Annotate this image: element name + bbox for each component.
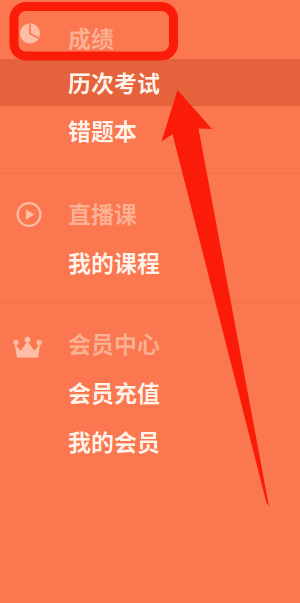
button[interactable]: 成绩 — [0, 15, 300, 59]
button[interactable]: 直播课 — [0, 191, 300, 235]
staticText: 直播课 — [68, 196, 137, 230]
button[interactable]: 历次考试 — [0, 58, 300, 105]
button[interactable]: 会员中心 — [0, 321, 300, 365]
button[interactable]: 我的课程 — [0, 238, 300, 286]
staticText: 会员中心 — [68, 326, 160, 360]
staticText: 会员充值 — [68, 375, 160, 409]
staticText: 错题本 — [68, 113, 137, 147]
button[interactable]: 我的会员 — [0, 417, 300, 465]
button[interactable]: 会员充值 — [0, 368, 300, 416]
staticText: 成绩 — [68, 21, 114, 54]
staticText: 我的课程 — [68, 245, 160, 279]
staticText: 历次考试 — [68, 65, 160, 99]
button[interactable]: 错题本 — [0, 106, 300, 154]
staticText: 我的会员 — [68, 424, 160, 458]
